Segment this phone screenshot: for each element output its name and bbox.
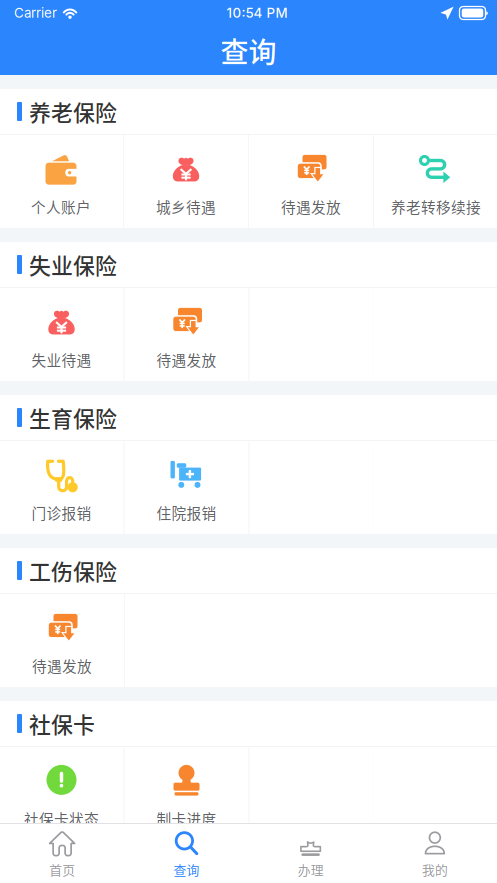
staticText: 住院报销 [156,502,216,523]
button[interactable]: 待遇发放 [124,288,248,381]
button[interactable]: 失业待遇 [0,288,123,381]
button[interactable]: 待遇发放 [249,135,373,228]
staticText: 查询 [173,860,199,879]
staticText: 门诊报销 [31,502,91,523]
staticText: 社保卡 [29,708,95,739]
button[interactable]: 我的 [373,824,497,883]
staticText: 首页 [49,860,75,879]
staticText: 工伤保险 [29,555,117,586]
button[interactable]: 社保卡状态 [0,747,123,840]
staticText: 查询 [220,30,276,71]
button[interactable]: 办理 [248,824,373,883]
button[interactable]: 门诊报销 [0,441,123,534]
staticText: 我的 [422,860,448,879]
staticText: 养老转移续接 [391,196,481,217]
staticText: 社保卡状态 [24,808,99,829]
button[interactable]: 住院报销 [124,441,248,534]
staticText: 办理 [298,860,324,879]
button[interactable]: 首页 [0,824,124,883]
staticText: 生育保险 [29,402,117,433]
button[interactable]: 待遇发放 [0,594,124,687]
button[interactable]: 查询 [124,824,248,883]
button[interactable]: 制卡进度 [124,747,248,840]
button[interactable]: 养老转移续接 [374,135,497,228]
staticText: 待遇发放 [281,196,341,217]
staticText: 失业待遇 [31,349,91,370]
staticText: 制卡进度 [156,808,216,829]
button[interactable]: 个人账户 [0,135,123,228]
staticText: 养老保险 [29,96,117,127]
staticText: 失业保险 [29,249,117,280]
staticText: 个人账户 [31,196,91,217]
staticText: Carrier [14,5,57,21]
staticText: 城乡待遇 [156,196,216,217]
staticText: 待遇发放 [156,349,216,370]
staticText: 待遇发放 [32,655,92,676]
button[interactable]: 城乡待遇 [124,135,248,228]
staticText: 10:54 PM [226,5,287,21]
